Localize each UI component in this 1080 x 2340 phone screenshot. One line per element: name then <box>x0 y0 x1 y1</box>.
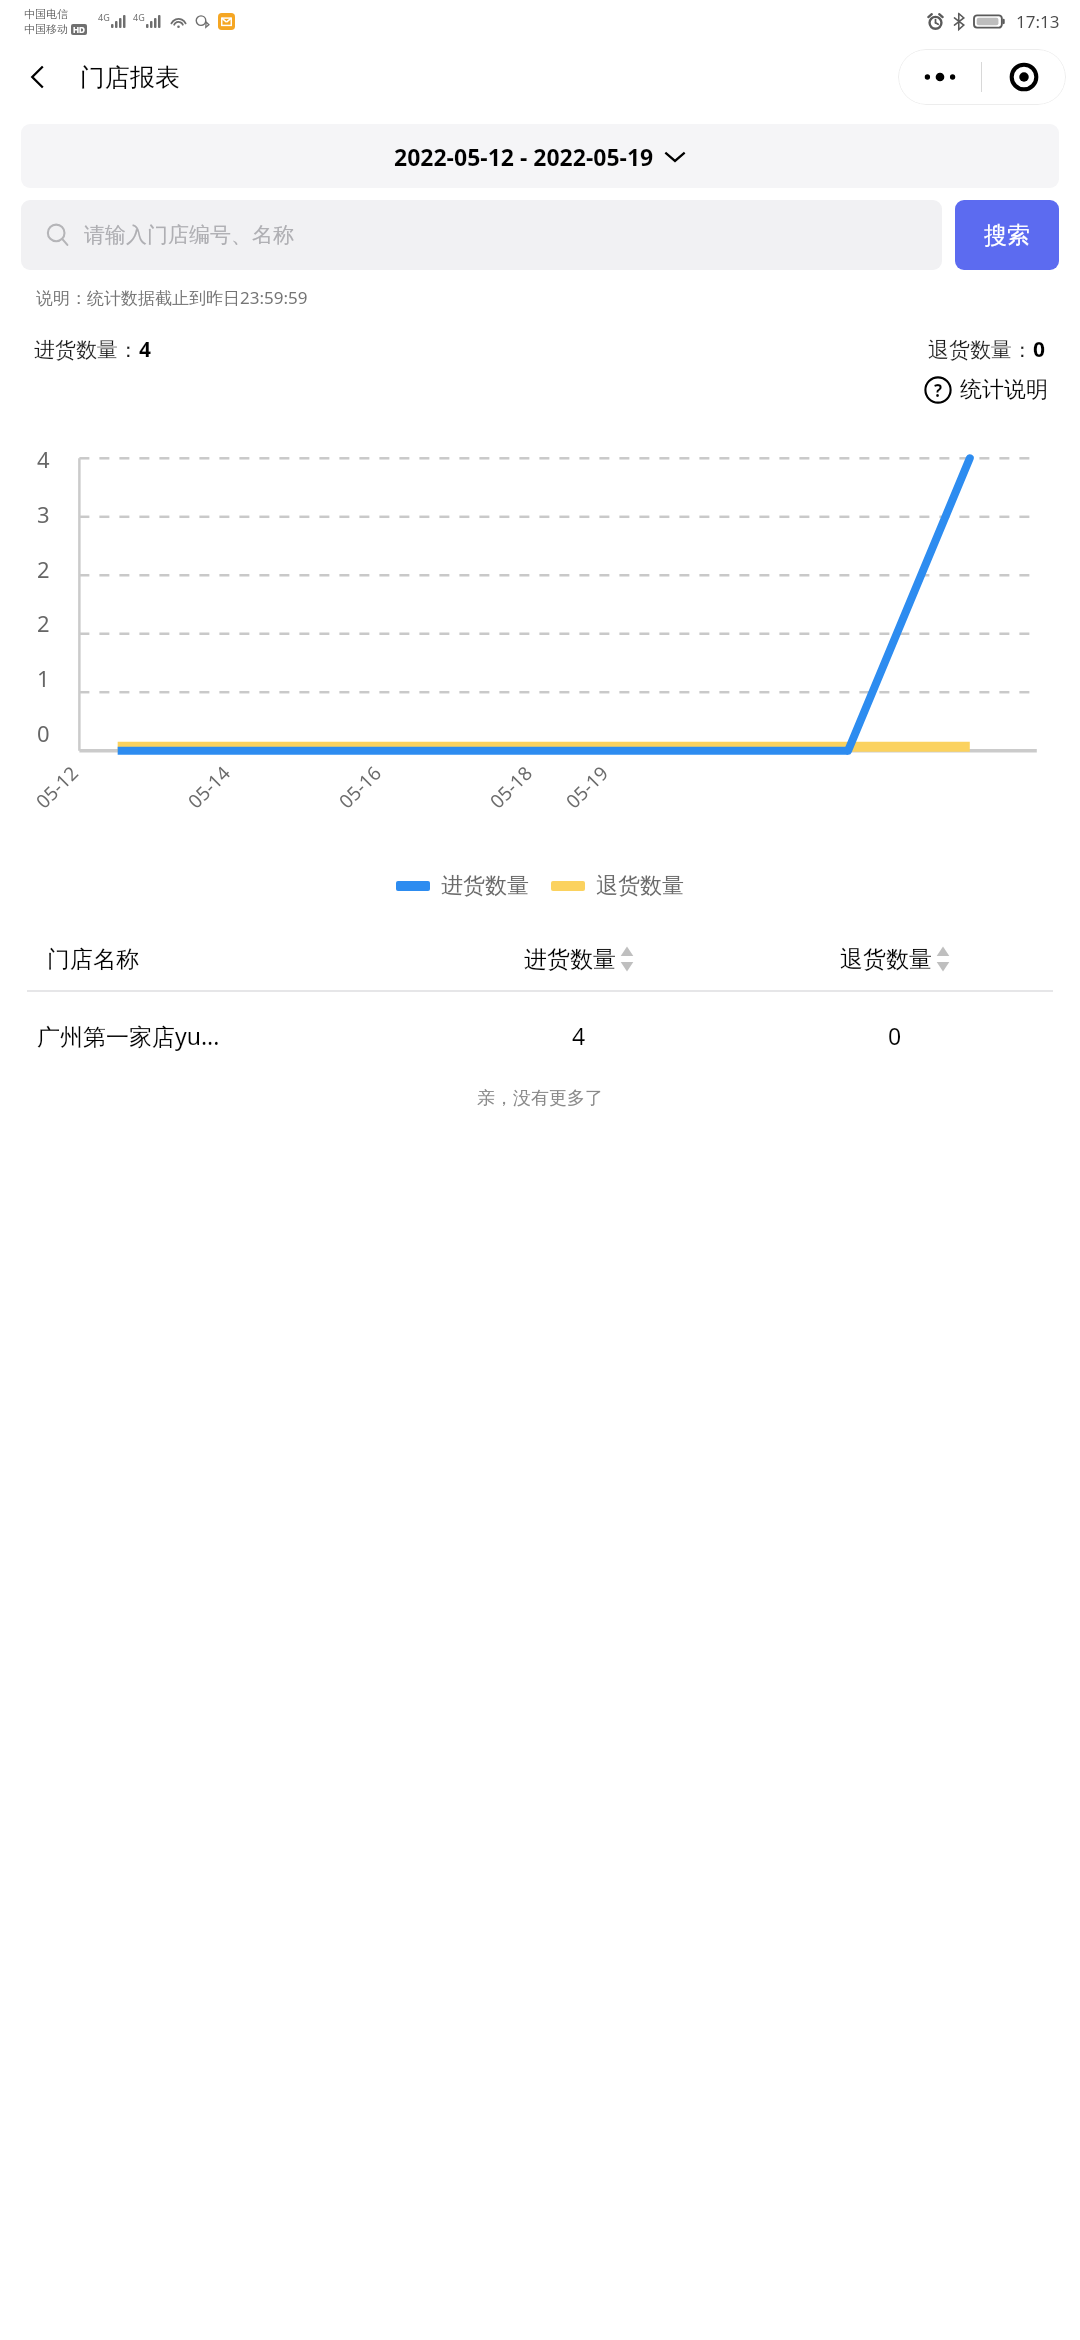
button[interactable]: 进货数量 <box>421 944 737 974</box>
staticText: 门店名称 <box>47 945 139 974</box>
button[interactable]: 退货数量 <box>737 944 1053 974</box>
staticText: 请输入门店编号、名称 <box>84 222 294 248</box>
button[interactable]: 2022-05-12 - 2022-05-19 <box>21 124 1059 188</box>
staticText: 17:13 <box>1016 10 1060 33</box>
staticText: 1 <box>37 663 50 693</box>
staticText: 05-16 <box>333 760 387 814</box>
staticText: 4G <box>133 11 145 23</box>
staticText: 4 <box>139 335 152 364</box>
button[interactable]: Close mini program <box>982 49 1066 105</box>
button[interactable]: 请输入门店编号、名称 <box>21 200 942 270</box>
staticText: 0 <box>888 1020 902 1051</box>
staticText: 说明：统计数据截止到昨日23:59:59 <box>36 286 308 309</box>
button[interactable]: Back <box>12 51 64 103</box>
button[interactable]: More options <box>898 49 981 105</box>
staticText: 退货数量 <box>596 872 684 900</box>
staticText: 统计说明 <box>960 376 1048 404</box>
staticText: 亲，没有更多了 <box>0 1087 1080 1110</box>
staticText: 门店报表 <box>80 62 180 93</box>
staticText: 0 <box>37 718 50 748</box>
staticText: 3 <box>37 499 50 529</box>
staticText: 进货数量： <box>34 337 139 363</box>
staticText: 4 <box>572 1020 586 1051</box>
staticText: 中国电信 <box>24 7 68 21</box>
staticText: 2 <box>37 554 50 584</box>
staticText: 4G <box>98 11 110 23</box>
staticText: HD <box>73 24 85 35</box>
staticText: 05-18 <box>484 760 538 814</box>
button[interactable]: 搜索 <box>955 200 1059 270</box>
staticText: 中国移动 <box>24 22 68 36</box>
staticText: 广州第一家店yu... <box>37 1020 220 1051</box>
staticText: ? <box>934 379 943 402</box>
staticText: 退货数量 <box>840 945 932 974</box>
staticText: 05-19 <box>560 760 614 814</box>
button[interactable]: 广州第一家店yu... <box>0 1020 1080 1051</box>
staticText: 05-14 <box>182 760 236 814</box>
button[interactable]: ? <box>920 372 1052 408</box>
staticText: 05-12 <box>30 760 84 814</box>
staticText: 0 <box>1033 335 1046 364</box>
staticText: 搜索 <box>984 221 1030 250</box>
staticText: 2022-05-12 - 2022-05-19 <box>394 141 654 172</box>
staticText: 进货数量 <box>441 872 529 900</box>
staticText: 退货数量： <box>928 337 1033 363</box>
staticText: 4 <box>37 444 50 474</box>
staticText: 进货数量 <box>524 945 616 974</box>
staticText: 2 <box>37 608 50 638</box>
